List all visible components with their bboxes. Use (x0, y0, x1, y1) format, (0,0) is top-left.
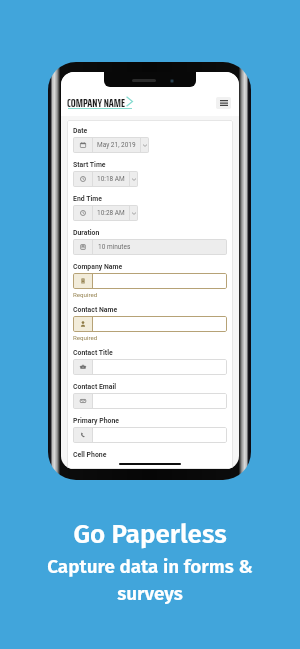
button[interactable]: 10:28 AM (73, 205, 138, 221)
staticText: Start Time (73, 161, 106, 169)
button[interactable]: May 21, 2019 (73, 137, 149, 153)
button[interactable] (73, 427, 227, 443)
staticText: Required (73, 334, 98, 341)
staticText: End Time (73, 195, 102, 203)
button[interactable]: Open navigation menu (216, 97, 231, 109)
staticText: Date (73, 127, 88, 135)
staticText: COMPANY NAME (67, 94, 126, 113)
staticText: Company Name (73, 263, 123, 271)
staticText: 10:28 AM (97, 209, 125, 217)
staticText: Contact Name (73, 306, 118, 314)
staticText: Contact Email (73, 383, 117, 391)
button[interactable]: 10 minutes (73, 239, 227, 255)
button[interactable] (73, 359, 227, 375)
staticText: Required (73, 291, 98, 298)
staticText: Primary Phone (73, 417, 119, 425)
button[interactable] (73, 273, 227, 289)
staticText: 10 minutes (98, 243, 131, 251)
staticText: Contact Title (73, 349, 113, 357)
staticText: Duration (73, 229, 100, 237)
staticText: 10:18 AM (97, 175, 125, 183)
staticText: Capture data in forms & surveys (0, 555, 300, 605)
staticText: Go Paperless (0, 519, 300, 550)
button[interactable] (73, 316, 227, 332)
staticText: Cell Phone (73, 451, 107, 459)
staticText: May 21, 2019 (97, 141, 136, 149)
button[interactable] (73, 393, 227, 409)
button[interactable]: 10:18 AM (73, 171, 138, 187)
